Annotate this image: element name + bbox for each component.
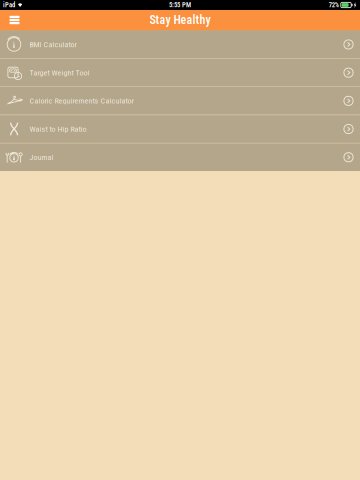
staticText: Caloric Requirements Calculator <box>29 96 133 106</box>
button[interactable]: Caloric Requirements Calculator <box>0 87 360 115</box>
staticText: Waist to Hip Ratio <box>29 124 86 134</box>
staticText: 5:55 PM <box>169 1 191 9</box>
staticText: 72% <box>329 1 339 9</box>
staticText: iPad <box>3 1 15 9</box>
button[interactable]: BMI Calculator <box>0 31 360 58</box>
staticText: BMI Calculator <box>29 40 76 49</box>
button[interactable]: Waist to Hip Ratio <box>0 115 360 143</box>
button[interactable]: Target Weight Tool <box>0 59 360 86</box>
button[interactable]: Journal <box>0 143 360 171</box>
staticText: Journal <box>29 153 53 162</box>
staticText: Stay Healthy <box>149 13 210 27</box>
staticText: Target Weight Tool <box>29 68 89 77</box>
button[interactable]: Menu <box>3 10 25 30</box>
